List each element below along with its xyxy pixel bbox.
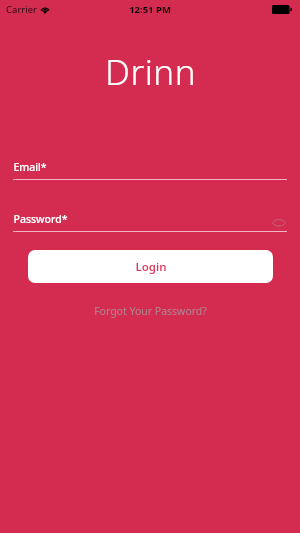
button[interactable]: Password* [13,211,287,232]
button[interactable]: Login [28,250,273,283]
button[interactable]: Email* [13,159,287,180]
button[interactable]: Show password [271,216,287,228]
staticText: Email* [13,160,47,174]
staticText: Drinn [105,48,196,96]
staticText: Password* [13,212,68,226]
staticText: Login [135,259,167,275]
staticText: Forgot Your Password? [94,304,207,318]
staticText: 12:51 PM [129,3,171,16]
staticText: Carrier [6,3,37,16]
button[interactable]: Forgot Your Password? [84,301,217,321]
